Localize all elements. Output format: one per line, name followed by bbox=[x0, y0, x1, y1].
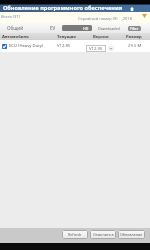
staticText: Отменить в bbox=[93, 232, 114, 237]
button[interactable]: Серийный номер (9) bbox=[78, 16, 118, 21]
staticText: ECU (Heavy Duty) bbox=[9, 43, 44, 49]
button[interactable]: More options bbox=[108, 46, 114, 51]
staticText: Текущая bbox=[57, 34, 76, 40]
button[interactable]: Всего (37) bbox=[1, 14, 20, 19]
button[interactable]: ECU (Heavy Duty) bbox=[2, 43, 44, 49]
staticText: Автомобиль bbox=[2, 34, 29, 40]
staticText: Downloaded bbox=[98, 26, 120, 31]
button[interactable]: Общий bbox=[7, 25, 24, 31]
staticText: 29.5 M bbox=[128, 43, 142, 49]
staticText: V12.90 bbox=[89, 46, 103, 52]
button[interactable]: Отменить в bbox=[90, 230, 116, 239]
button[interactable]: HD bbox=[62, 25, 92, 31]
staticText: Refresh bbox=[68, 232, 82, 237]
staticText: Обновление программного обеспечения bbox=[3, 4, 123, 12]
staticText: HD bbox=[83, 26, 89, 31]
button[interactable]: Refresh bbox=[62, 230, 88, 239]
staticText: _2018 bbox=[121, 16, 132, 21]
staticText: V12.85 bbox=[57, 43, 71, 49]
button[interactable]: Обновление bbox=[118, 230, 145, 239]
staticText: Версия bbox=[93, 34, 109, 40]
button[interactable]: EV bbox=[50, 25, 56, 31]
button[interactable]: Home bbox=[130, 7, 134, 11]
staticText: Обновление bbox=[120, 232, 143, 237]
button[interactable]: Filter bbox=[128, 26, 141, 31]
staticText: Filter bbox=[130, 26, 139, 31]
staticText: Размер bbox=[126, 34, 142, 40]
